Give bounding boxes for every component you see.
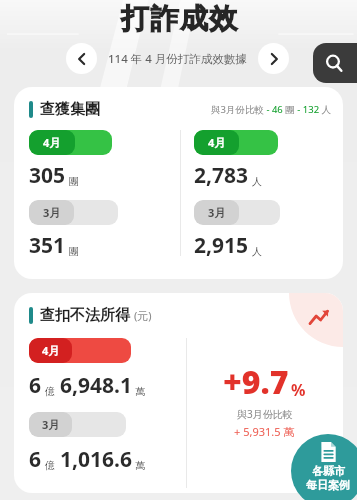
staticText: 4月: [208, 135, 226, 150]
staticText: (元): [134, 308, 152, 323]
staticText: 每日案例: [306, 478, 350, 492]
staticText: 人: [252, 245, 262, 258]
staticText: 2,783: [194, 161, 249, 190]
staticText: 3月: [42, 417, 60, 432]
staticText: 4月: [42, 343, 60, 358]
staticText: 6: [29, 371, 42, 400]
staticText: 114 年 4 月份打詐成效數據: [108, 51, 247, 67]
staticText: 人: [252, 175, 262, 188]
staticText: 與3月份比較: [237, 407, 293, 421]
staticText: 查扣不法所得: [40, 306, 130, 325]
staticText: 億: [45, 459, 55, 472]
staticText: 6: [29, 445, 42, 474]
button[interactable]: Search: [313, 43, 357, 83]
staticText: 3月: [208, 205, 226, 220]
staticText: 萬: [135, 459, 145, 472]
button[interactable]: 查獲集團: [14, 87, 343, 279]
staticText: 351: [29, 231, 66, 260]
button[interactable]: Previous month: [66, 43, 97, 74]
staticText: 3月: [43, 205, 61, 220]
staticText: 1,016.6: [60, 445, 132, 474]
staticText: 查獲集團: [40, 100, 100, 119]
staticText: 4月: [43, 135, 61, 150]
staticText: 與3月份比較 - 46 團 - 132 人: [211, 103, 332, 116]
staticText: 各縣市: [312, 464, 345, 478]
staticText: 305: [29, 161, 66, 190]
staticText: 6,948.1: [60, 371, 132, 400]
staticText: 打詐成效: [120, 1, 238, 36]
staticText: + 5,931.5 萬: [234, 424, 295, 439]
staticText: +9.7: [223, 360, 289, 404]
staticText: 團: [69, 175, 79, 188]
button[interactable]: 各縣市: [291, 434, 357, 500]
button[interactable]: 查扣不法所得: [14, 293, 343, 493]
staticText: 2,915: [194, 231, 249, 260]
staticText: 萬: [135, 385, 145, 398]
staticText: 億: [45, 385, 55, 398]
button[interactable]: Next month: [258, 43, 289, 74]
staticText: 團: [69, 245, 79, 258]
staticText: %: [291, 379, 306, 401]
